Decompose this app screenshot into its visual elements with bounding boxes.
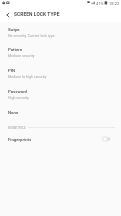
staticText: High security	[8, 96, 29, 100]
staticText: Password	[8, 89, 28, 94]
staticText: Fingerprints	[8, 137, 32, 142]
staticText: None	[8, 110, 19, 115]
staticText: SCREEN LOCK TYPE	[14, 12, 60, 18]
button[interactable]: Back	[0, 8, 15, 22]
staticText: Medium to high security	[8, 75, 47, 79]
staticText: Pattern	[8, 47, 23, 52]
staticText: No security. Current lock type	[8, 34, 55, 38]
staticText: PIN	[8, 68, 16, 73]
staticText: Medium security	[8, 54, 35, 58]
button[interactable]: Pattern	[0, 47, 121, 67]
button[interactable]: Fingerprints	[0, 130, 121, 148]
button[interactable]: Swipe	[0, 27, 121, 47]
staticText: 41%	[96, 1, 104, 6]
staticText: Swipe	[8, 27, 20, 32]
button[interactable]: PIN	[0, 68, 121, 88]
button[interactable]: None	[0, 110, 121, 130]
staticText: 18:22	[109, 1, 120, 6]
staticText: BIOMETRICS	[8, 126, 26, 129]
button[interactable]: Password	[0, 89, 121, 109]
